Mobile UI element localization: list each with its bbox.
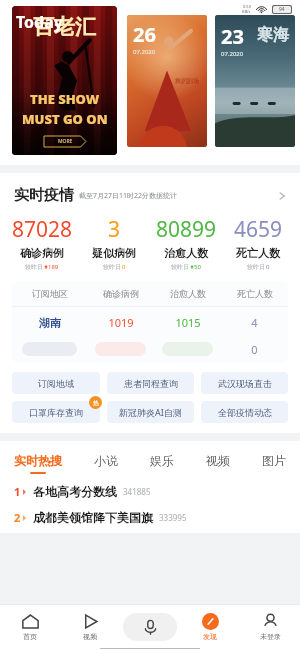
staticText: 实时热搜: [14, 453, 62, 468]
button[interactable]: 小说: [94, 453, 118, 472]
staticText: 0: [122, 263, 126, 271]
staticText: 小说: [94, 453, 118, 468]
staticText: 订阅地域: [38, 378, 74, 389]
staticText: 07.2020: [221, 50, 244, 58]
staticText: 1015: [175, 315, 201, 330]
staticText: 26: [133, 21, 156, 48]
button[interactable]: 实时热搜: [14, 453, 62, 474]
staticText: 热: [93, 399, 99, 407]
staticText: 确诊病例: [103, 288, 139, 299]
staticText: MUST GO ON: [22, 110, 108, 128]
button[interactable]: 患者同程查询: [107, 372, 194, 394]
staticText: 50: [194, 263, 201, 271]
button[interactable]: 未登录: [240, 604, 300, 650]
staticText: 较昨日: [103, 263, 121, 271]
button[interactable]: 80899: [150, 215, 222, 271]
staticText: 治愈人数: [170, 288, 206, 299]
staticText: 0: [266, 263, 270, 271]
button[interactable]: 26: [127, 15, 207, 147]
button[interactable]: 实时疫情: [0, 173, 300, 211]
staticText: 4: [251, 315, 258, 330]
button[interactable]: 4659: [222, 215, 294, 271]
button[interactable]: 视频: [60, 604, 120, 650]
staticText: 寒海: [257, 25, 289, 45]
staticText: 较昨日: [171, 263, 189, 271]
staticText: 23: [221, 23, 244, 50]
staticText: THE SHOW: [30, 90, 100, 108]
staticText: 确诊病例: [20, 246, 64, 260]
staticText: 娱乐: [150, 453, 174, 468]
staticText: 成都美领馆降下美国旗: [33, 510, 153, 525]
staticText: 94: [279, 6, 285, 13]
staticText: Today: [16, 11, 63, 33]
staticText: 较昨日: [25, 263, 43, 271]
staticText: 0: [251, 342, 258, 357]
staticText: 80899: [156, 215, 217, 244]
staticText: 武汉现场直击: [218, 378, 272, 389]
staticText: 首页: [23, 632, 37, 641]
staticText: 新冠肺炎AI自测: [119, 406, 182, 418]
staticText: 订阅地区: [32, 288, 68, 299]
staticText: 3: [108, 215, 121, 244]
staticText: 189: [48, 263, 59, 271]
button[interactable]: Voice search: [123, 613, 177, 641]
staticText: 视频: [83, 632, 97, 641]
staticText: 1: [14, 484, 21, 499]
staticText: 各地高考分数线: [33, 484, 117, 499]
staticText: 07.2020: [133, 48, 156, 56]
button[interactable]: 2: [0, 510, 300, 525]
staticText: 发现: [203, 632, 217, 641]
button[interactable]: 发现: [180, 604, 240, 650]
button[interactable]: 图片: [262, 453, 286, 472]
button[interactable]: 3: [78, 215, 150, 271]
staticText: 湖南: [39, 316, 61, 330]
button[interactable]: 87028: [6, 215, 78, 271]
staticText: 舞蹈剧场: [175, 77, 199, 85]
staticText: 未登录: [260, 632, 281, 641]
staticText: 0.50: [243, 4, 251, 9]
button[interactable]: 百老汇: [12, 6, 117, 155]
staticText: 4659: [234, 215, 283, 244]
staticText: 患者同程查询: [124, 378, 178, 389]
staticText: 视频: [206, 453, 230, 468]
button[interactable]: 口罩库存查询: [12, 401, 100, 423]
button[interactable]: 全部疫情动态: [201, 401, 288, 423]
staticText: 死亡人数: [237, 288, 273, 299]
staticText: 百老汇: [33, 14, 96, 40]
staticText: KB/s: [242, 9, 251, 14]
staticText: 333995: [159, 512, 187, 523]
staticText: 治愈人数: [164, 246, 208, 260]
staticText: 图片: [262, 453, 286, 468]
staticText: 截至7月27日11时22分数据统计: [79, 191, 178, 201]
staticText: 1019: [108, 315, 134, 330]
button[interactable]: 1: [0, 484, 300, 499]
button[interactable]: 首页: [0, 604, 60, 650]
staticText: 较昨日: [247, 263, 265, 271]
button[interactable]: 新冠肺炎AI自测: [107, 401, 194, 423]
staticText: 实时疫情: [14, 186, 74, 205]
button[interactable]: 湖南: [12, 307, 288, 338]
button[interactable]: 视频: [206, 453, 230, 472]
staticText: 死亡人数: [236, 246, 280, 260]
staticText: MORE: [58, 138, 73, 145]
staticText: 341885: [123, 486, 151, 497]
button[interactable]: 23: [215, 15, 295, 147]
staticText: 2: [14, 510, 21, 525]
button[interactable]: 武汉现场直击: [201, 372, 288, 394]
button[interactable]: 娱乐: [150, 453, 174, 472]
staticText: 疑似病例: [92, 246, 136, 260]
staticText: 口罩库存查询: [29, 407, 83, 418]
staticText: 全部疫情动态: [218, 407, 272, 418]
button[interactable]: 订阅地域: [12, 372, 100, 394]
staticText: 87028: [12, 215, 73, 244]
